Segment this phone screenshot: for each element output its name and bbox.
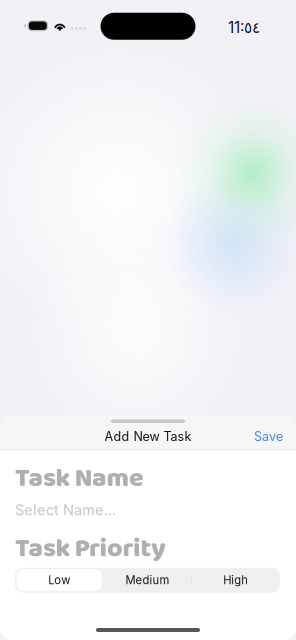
button[interactable]: Medium [103, 568, 192, 593]
staticText: 11:٥٤ [228, 18, 260, 37]
button[interactable]: Save [241, 424, 296, 449]
button[interactable]: Low [15, 568, 103, 593]
staticText: High [223, 573, 248, 587]
button[interactable]: High [192, 568, 280, 593]
staticText: Select Name... [15, 501, 116, 519]
staticText: Save [254, 429, 283, 444]
staticText: Add New Task [104, 429, 191, 444]
staticText: Task Priority [15, 527, 166, 570]
staticText: Low [48, 573, 70, 587]
staticText: Medium [125, 573, 169, 587]
staticText: Task Name [15, 457, 144, 500]
